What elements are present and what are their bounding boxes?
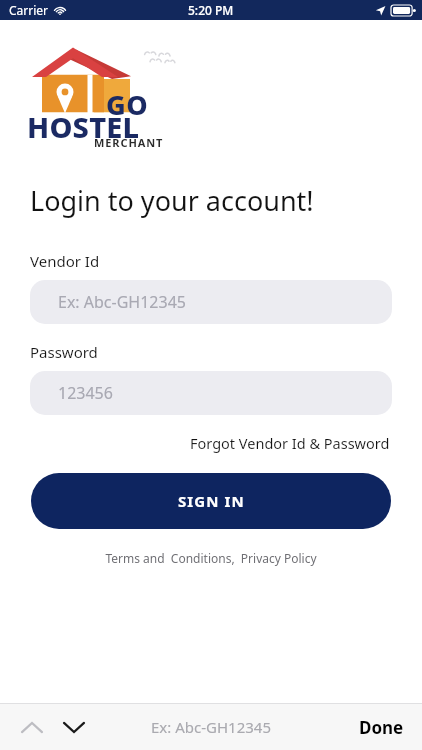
staticText: 123456 (58, 382, 113, 404)
staticText: SIGN IN (178, 491, 245, 511)
staticText: Forgot Vendor Id & Password (190, 433, 390, 453)
staticText: Done (359, 716, 404, 739)
staticText: HOSTEL (27, 107, 140, 146)
staticText: Login to your account! (30, 182, 314, 219)
button[interactable]: Forgot Vendor Id & Password (188, 429, 392, 457)
button[interactable]: Previous field (14, 709, 50, 745)
button[interactable]: Done (353, 712, 410, 743)
staticText: Ex: Abc-GH12345 (58, 291, 186, 313)
button[interactable]: Next field (56, 709, 92, 745)
staticText: Vendor Id (30, 251, 100, 271)
staticText: Ex: Abc-GH12345 (151, 717, 271, 737)
staticText: GO (106, 86, 149, 123)
staticText: Password (30, 342, 98, 362)
button[interactable]: SIGN IN (31, 473, 391, 529)
staticText: Carrier (9, 2, 49, 18)
button[interactable]: Ex: Abc-GH12345 (30, 280, 392, 324)
staticText: MERCHANT (94, 135, 164, 150)
staticText: Terms and Conditions, Privacy Policy (105, 550, 317, 566)
button[interactable]: Terms and Conditions, Privacy Policy (101, 547, 321, 569)
staticText: 5:20 PM (188, 2, 234, 18)
button[interactable]: 123456 (30, 371, 392, 415)
